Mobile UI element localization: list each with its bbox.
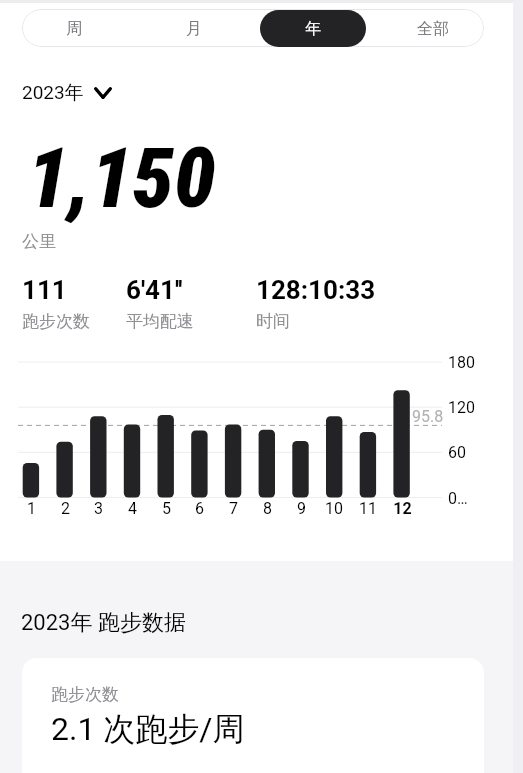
staticText: 跑步次数 xyxy=(22,311,90,332)
staticText: 128:10:33 xyxy=(256,275,376,305)
staticText: 5 xyxy=(162,499,171,518)
staticText: 0… xyxy=(448,489,468,508)
staticText: 180 xyxy=(448,353,475,372)
button[interactable]: 全部 xyxy=(380,10,486,47)
staticText: 12 xyxy=(393,499,412,518)
staticText: 9 xyxy=(297,499,306,518)
button[interactable]: 2023年 xyxy=(22,81,112,105)
staticText: 95.8 xyxy=(412,407,444,426)
staticText: 时间 xyxy=(256,311,290,332)
staticText: 4 xyxy=(128,499,137,518)
staticText: 8 xyxy=(263,499,272,518)
button[interactable]: 跑步次数 xyxy=(22,658,484,773)
staticText: 1 xyxy=(27,499,36,518)
staticText: 月 xyxy=(186,19,202,39)
staticText: 公里 xyxy=(22,231,56,252)
staticText: 6'41'' xyxy=(126,275,183,305)
staticText: 跑步次数 xyxy=(51,684,119,705)
staticText: 111 xyxy=(22,275,67,305)
button[interactable]: 周 xyxy=(21,10,127,47)
staticText: 2023年 xyxy=(22,81,84,105)
staticText: 3 xyxy=(94,499,103,518)
staticText: 平均配速 xyxy=(126,311,194,332)
staticText: 10 xyxy=(325,499,343,518)
other: Choose year xyxy=(94,87,112,99)
staticText: 年 xyxy=(305,19,321,39)
staticText: 2 xyxy=(61,499,70,518)
staticText: 周 xyxy=(66,19,82,39)
staticText: 6 xyxy=(195,499,204,518)
staticText: 2023年 跑步数据 xyxy=(21,609,186,637)
staticText: 60 xyxy=(448,443,466,462)
staticText: 2.1 次跑步/周 xyxy=(51,709,245,749)
button[interactable]: 年 xyxy=(260,10,366,47)
staticText: 11 xyxy=(359,499,377,518)
staticText: 1,150 xyxy=(27,129,216,227)
staticText: 全部 xyxy=(417,19,449,39)
staticText: 120 xyxy=(448,398,475,417)
staticText: 7 xyxy=(229,499,238,518)
button[interactable]: 月 xyxy=(141,10,247,47)
